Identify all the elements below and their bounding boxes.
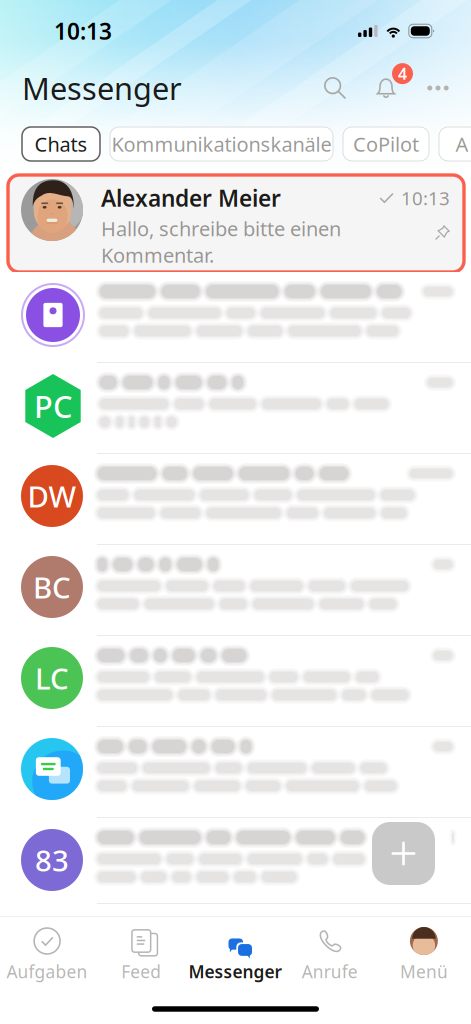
button[interactable]: Messenger <box>188 917 283 990</box>
staticText: Chats <box>34 131 87 157</box>
button[interactable]: Aufgaben <box>0 917 94 990</box>
button[interactable]: Feed <box>94 917 188 990</box>
button[interactable]: Alexander Meier <box>8 175 464 272</box>
button[interactable]: A <box>439 127 471 161</box>
button[interactable]: Menü <box>377 917 471 990</box>
staticText: Menü <box>400 960 448 983</box>
button[interactable]: CoPilot <box>343 127 429 161</box>
button[interactable]: Neuer Chat <box>372 822 435 885</box>
button[interactable]: Anrufe <box>283 917 377 990</box>
staticText: Anrufe <box>302 960 358 983</box>
staticText: 4 <box>398 63 407 84</box>
button[interactable]: PC <box>0 363 471 454</box>
staticText: 10:13 <box>401 186 450 210</box>
button[interactable]: 83 <box>0 818 471 904</box>
staticText: 10:13 <box>54 16 112 46</box>
button[interactable]: BC <box>0 545 471 636</box>
button[interactable]: Suchen <box>309 65 361 111</box>
staticText: A <box>455 131 468 157</box>
staticText: LC <box>35 658 69 697</box>
button[interactable]: Chats <box>22 127 100 161</box>
button[interactable] <box>0 727 471 818</box>
staticText: Alexander Meier <box>101 183 281 213</box>
staticText: Messenger <box>188 960 282 983</box>
button[interactable]: Weitere Optionen <box>411 65 465 111</box>
staticText: Feed <box>121 960 161 983</box>
staticText: 83 <box>35 840 69 879</box>
button[interactable] <box>0 272 471 363</box>
staticText: DW <box>27 476 76 515</box>
button[interactable]: Kommunikationskanäle <box>110 127 333 161</box>
button[interactable]: Benachrichtigungen, 4 neue <box>361 65 411 111</box>
staticText: Messenger <box>22 68 182 108</box>
staticText: PC <box>34 386 72 426</box>
staticText: Aufgaben <box>7 960 88 983</box>
button[interactable]: DW <box>0 454 471 545</box>
button[interactable]: LC <box>0 636 471 727</box>
staticText: Kommunikationskanäle <box>111 131 331 157</box>
staticText: CoPilot <box>353 131 419 157</box>
staticText: BC <box>33 567 71 606</box>
staticText: Hallo, schreibe bitte einen Kommentar. <box>101 215 341 268</box>
